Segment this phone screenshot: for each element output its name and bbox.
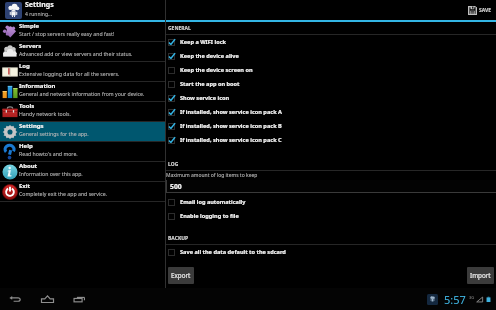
staticText: 4 running... <box>25 11 52 18</box>
staticText: Keep a WIFI lock <box>180 38 226 46</box>
staticText: Show service icon <box>180 94 230 102</box>
button[interactable]: Simple <box>0 22 165 41</box>
staticText: Enable logging to file <box>180 212 239 220</box>
staticText: Advanced add or view servers and their s… <box>19 50 133 57</box>
staticText: Servers <box>19 42 42 50</box>
staticText: GENERAL <box>168 25 191 32</box>
staticText: Completely exit the app and service. <box>19 190 107 197</box>
button[interactable]: 500 <box>166 180 496 192</box>
staticText: Simple <box>19 22 40 30</box>
button[interactable]: Recent apps <box>71 291 87 307</box>
other: Save <box>468 6 477 15</box>
button[interactable]: Enable logging to file <box>166 209 496 223</box>
button[interactable]: Back <box>7 291 23 307</box>
staticText: Start the app on boot <box>180 80 240 88</box>
staticText: Maximum amount of log items to keep <box>166 172 258 179</box>
staticText: Export <box>171 271 191 280</box>
button[interactable]: Help <box>0 142 165 161</box>
staticText: Extensive logging data for all the serve… <box>19 70 120 77</box>
staticText: Read howto's and more. <box>19 150 78 157</box>
button[interactable]: Settings <box>0 0 165 20</box>
button[interactable]: Tools <box>0 102 165 121</box>
staticText: Information over this app. <box>19 170 83 177</box>
button[interactable]: If installed, show service icon pack A <box>166 105 496 119</box>
staticText: Information <box>19 82 56 90</box>
button[interactable]: Start the app on boot <box>166 77 496 91</box>
staticText: If installed, show service icon pack B <box>180 122 282 130</box>
button[interactable]: Exit <box>0 182 165 201</box>
staticText: Settings <box>19 122 44 130</box>
staticText: LOG <box>168 161 179 168</box>
staticText: 500 <box>170 182 182 191</box>
button[interactable]: Keep the device alive <box>166 49 496 63</box>
button[interactable]: Keep a WIFI lock <box>166 35 496 49</box>
button[interactable]: If installed, show service icon pack B <box>166 119 496 133</box>
staticText: Settings <box>25 0 54 10</box>
staticText: Keep the device screen on <box>180 66 253 74</box>
staticText: Exit <box>19 182 31 190</box>
staticText: BACKUP <box>168 235 189 242</box>
staticText: 5:57 <box>444 292 466 307</box>
button[interactable]: Keep the device screen on <box>166 63 496 77</box>
button[interactable]: Home <box>38 290 56 308</box>
staticText: Save all the data default to the sdcard <box>180 248 286 256</box>
staticText: Tools <box>19 102 35 110</box>
button[interactable]: About <box>0 162 165 181</box>
button[interactable]: Show service icon <box>166 91 496 105</box>
staticText: 3G <box>469 295 475 300</box>
staticText: If installed, show service icon pack C <box>180 136 282 144</box>
button[interactable]: Save <box>465 4 495 17</box>
staticText: Log <box>19 62 30 70</box>
button[interactable]: Import <box>467 267 494 284</box>
button[interactable]: Export <box>168 267 194 284</box>
staticText: SAVE <box>479 7 492 14</box>
staticText: General and network information from you… <box>19 90 145 97</box>
button[interactable]: Save all the data default to the sdcard <box>166 245 496 259</box>
staticText: Handy network tools. <box>19 110 71 117</box>
staticText: Start / stop servers really easy and fas… <box>19 30 115 37</box>
button[interactable]: Information <box>0 82 165 101</box>
staticText: Keep the device alive <box>180 52 239 60</box>
button[interactable]: Settings <box>0 122 165 141</box>
staticText: Email log automatically <box>180 198 246 206</box>
button[interactable]: If installed, show service icon pack C <box>166 133 496 147</box>
staticText: Import <box>470 271 491 280</box>
button[interactable]: Servers <box>0 42 165 61</box>
staticText: General settings for the app. <box>19 130 89 137</box>
button[interactable]: Log <box>0 62 165 81</box>
staticText: Help <box>19 142 33 150</box>
button[interactable]: Email log automatically <box>166 195 496 209</box>
staticText: About <box>19 162 38 170</box>
staticText: If installed, show service icon pack A <box>180 108 282 116</box>
